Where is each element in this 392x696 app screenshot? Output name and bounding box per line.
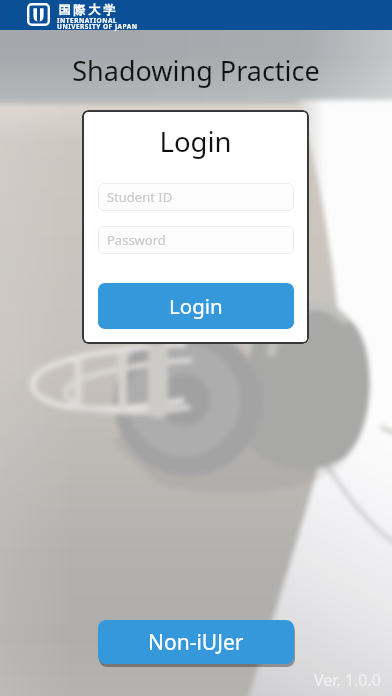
button[interactable]: Student ID	[98, 183, 294, 211]
staticText: Login	[82, 123, 309, 160]
staticText: Shadowing Practice	[0, 52, 392, 89]
staticText: 国際大学	[57, 2, 117, 17]
button[interactable]: Login	[98, 283, 294, 329]
staticText: Login	[169, 292, 223, 320]
other: International University of Japan	[0, 0, 81, 23]
staticText: INTERNATIONAL	[57, 16, 118, 25]
staticText: Student ID	[107, 188, 173, 206]
staticText: Password	[107, 231, 166, 249]
button[interactable]: Password	[98, 226, 294, 254]
staticText: Ver. 1.0.0	[314, 669, 381, 691]
staticText: Non-iUJer	[148, 628, 244, 657]
staticText: UNIVERSITY OF JAPAN	[57, 22, 138, 31]
button[interactable]: Non-iUJer	[98, 620, 294, 664]
